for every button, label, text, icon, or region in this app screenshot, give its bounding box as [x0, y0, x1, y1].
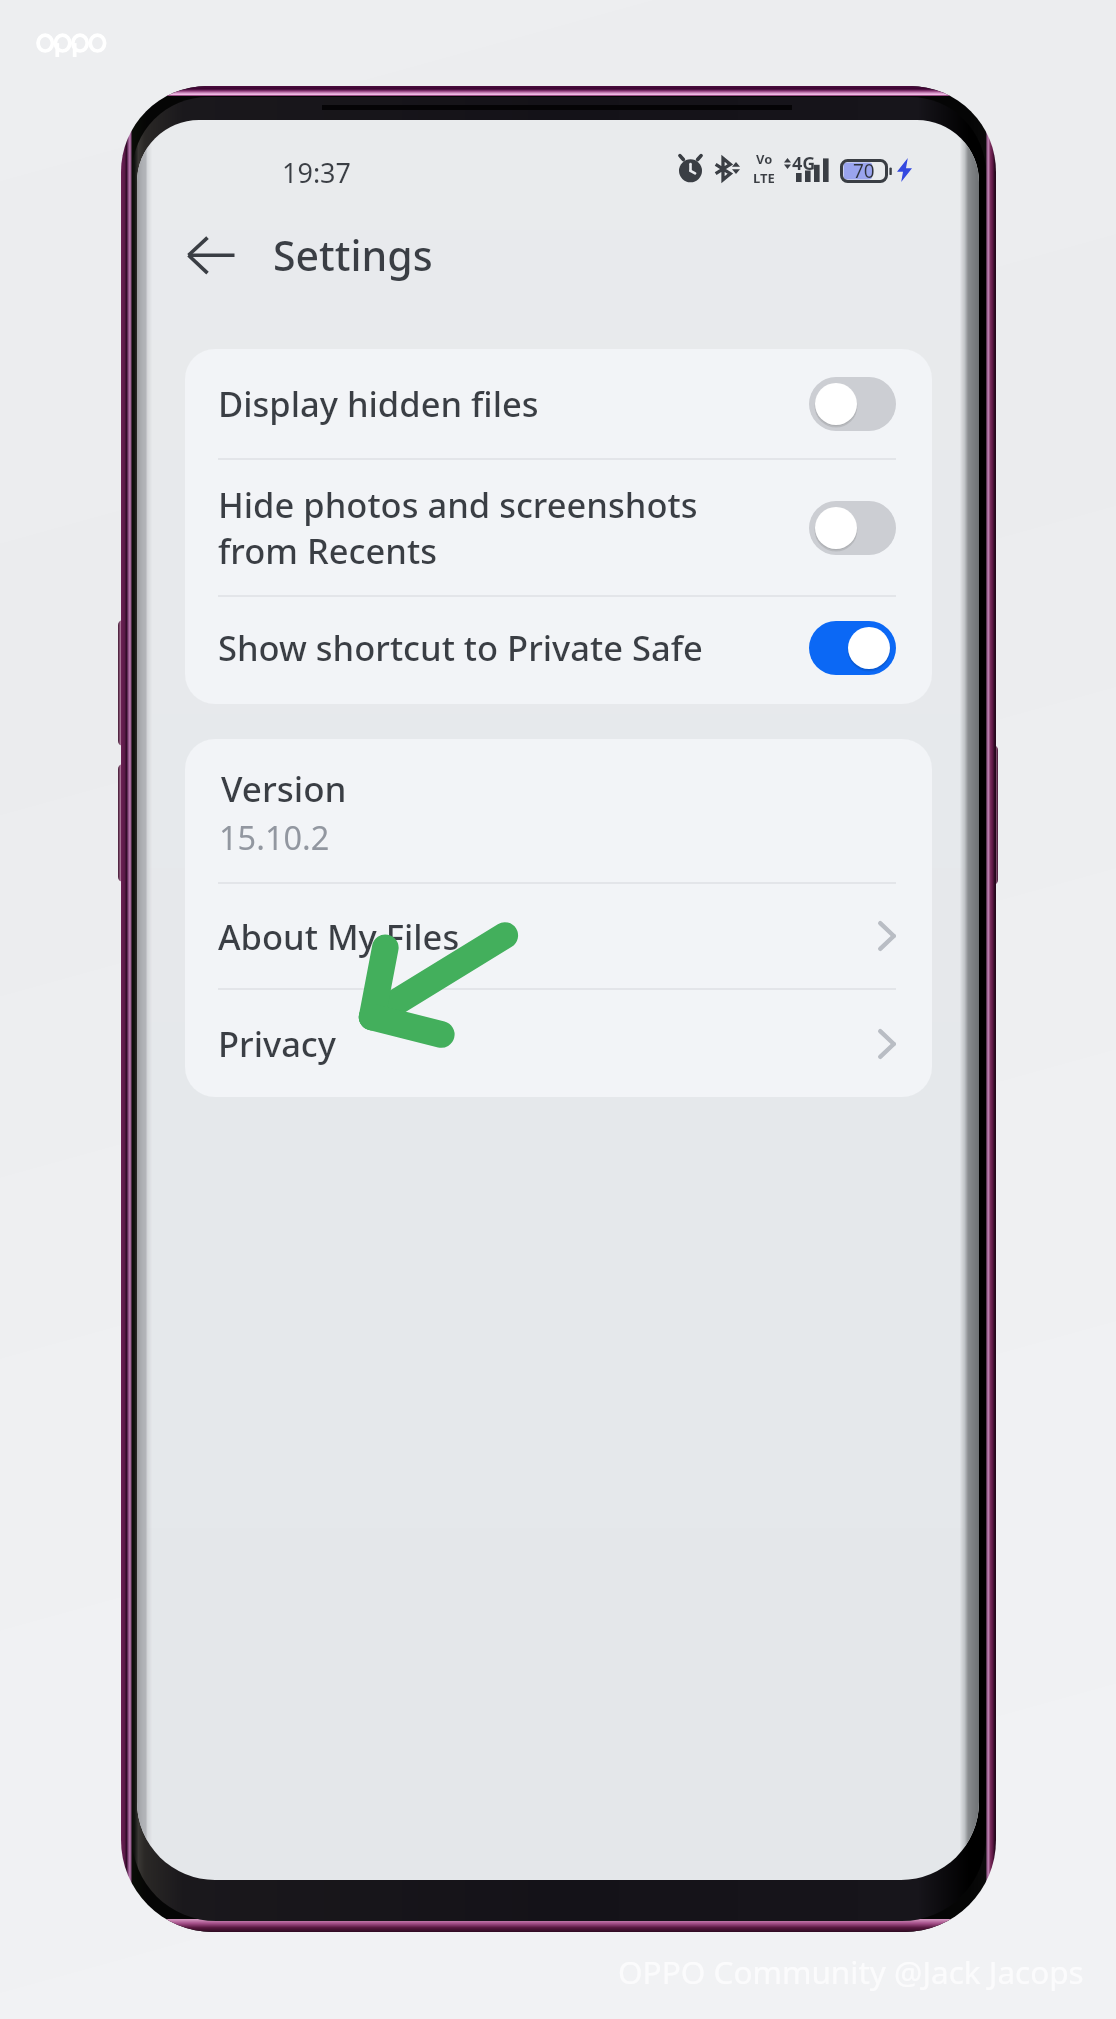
button[interactable]: Version — [185, 739, 932, 882]
staticText: Privacy — [218, 1020, 878, 1067]
staticText: About My Files — [218, 913, 878, 960]
staticText: 70 — [853, 158, 875, 182]
button[interactable]: Show shortcut to Private Safe — [185, 594, 932, 701]
button[interactable]: Toggle — [809, 501, 896, 555]
staticText: 4G — [792, 151, 816, 176]
button[interactable]: Display hidden files — [185, 349, 932, 458]
staticText: Hide photos and screenshots from Recents — [218, 481, 809, 574]
button[interactable]: Back — [175, 224, 239, 286]
staticText: Show shortcut to Private Safe — [218, 624, 809, 671]
staticText: Vo — [756, 150, 773, 168]
staticText: Display hidden files — [218, 380, 809, 427]
staticText: Version — [221, 765, 347, 813]
staticText: Settings — [273, 227, 433, 283]
button[interactable]: Privacy — [185, 990, 932, 1097]
staticText: OPPO Community @Jack Jacops — [618, 1950, 1084, 1993]
button[interactable]: About My Files — [185, 884, 932, 988]
button[interactable]: Toggle — [809, 377, 896, 431]
staticText: LTE — [753, 169, 775, 187]
staticText: 15.10.2 — [219, 815, 330, 859]
button[interactable]: Toggle — [809, 621, 896, 675]
staticText: 19:37 — [282, 154, 352, 191]
button[interactable]: Hide photos and screenshots from Recents — [185, 460, 932, 595]
